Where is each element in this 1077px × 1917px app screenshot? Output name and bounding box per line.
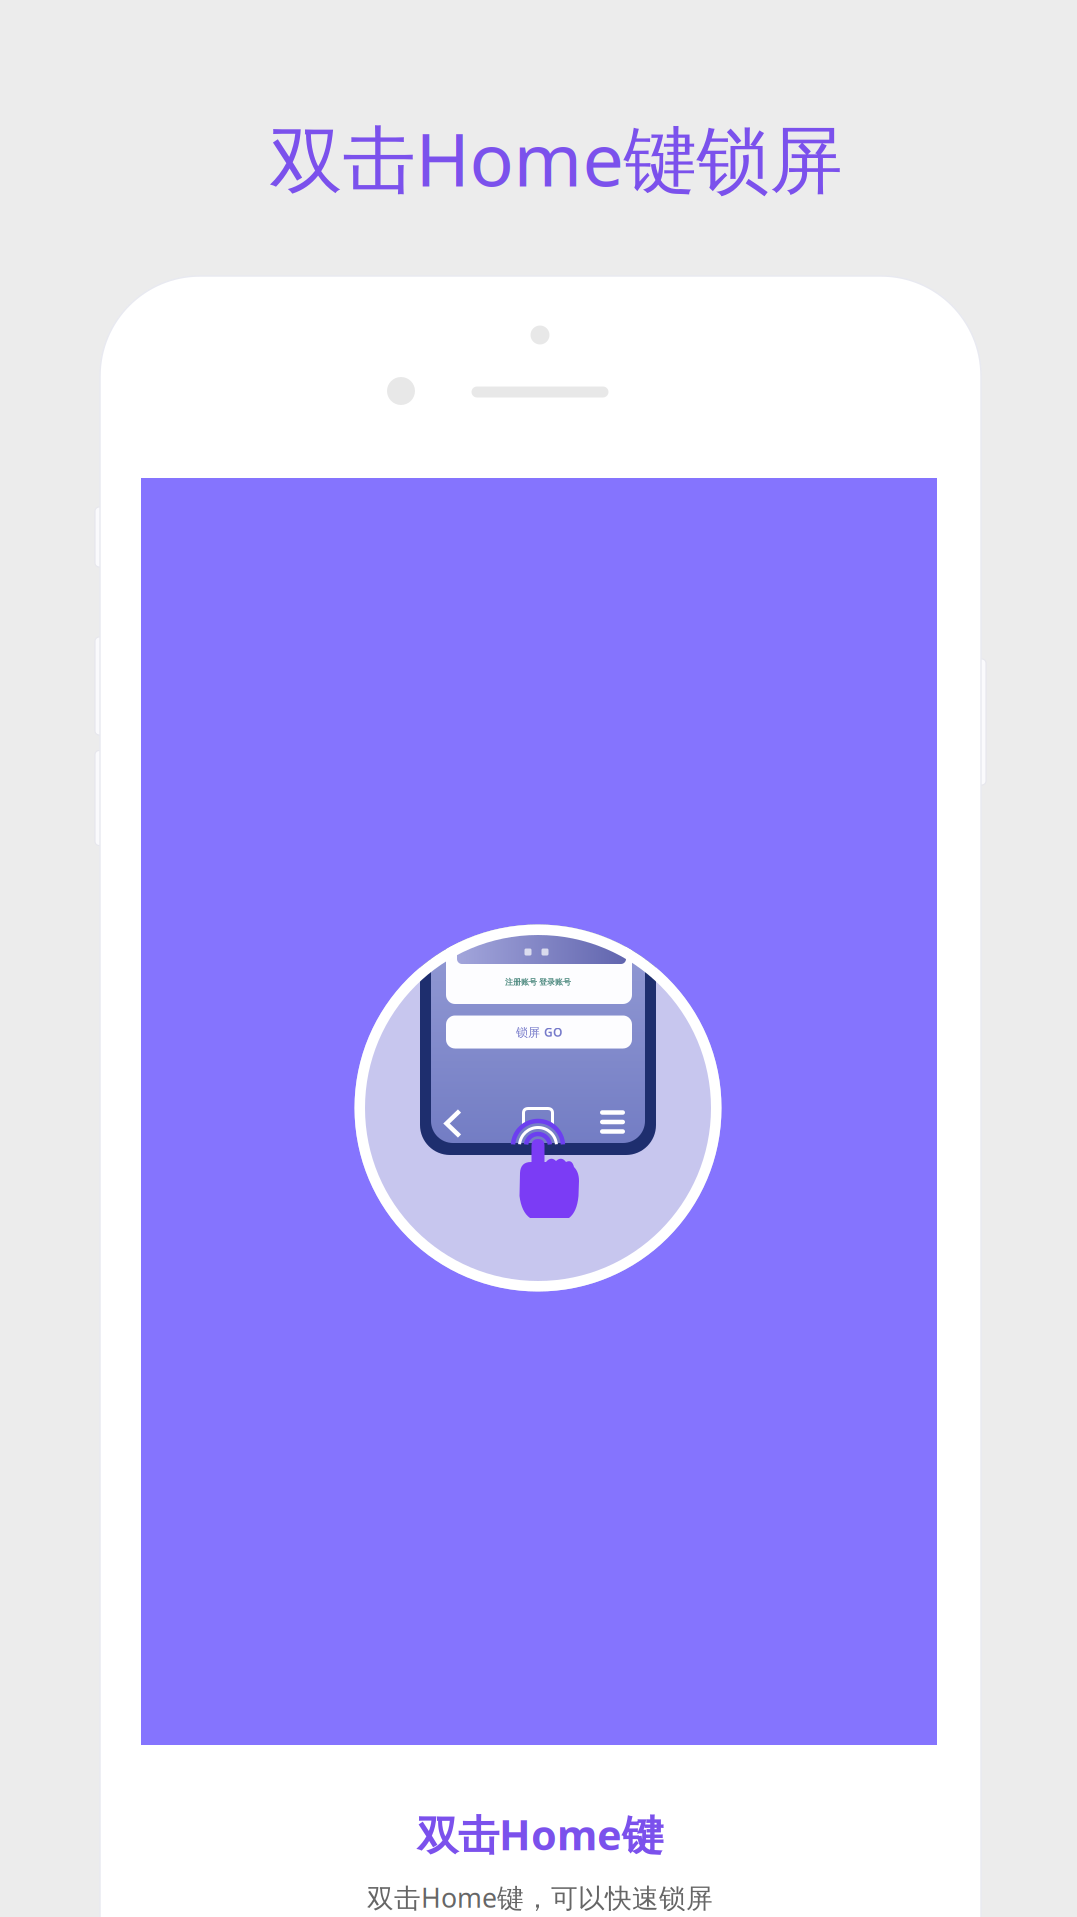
staticText: 双击Home键 <box>417 1807 663 1862</box>
staticText: 双击Home键，可以快速锁屏 <box>367 1880 713 1915</box>
staticText: 双击Home键锁屏 <box>269 109 842 207</box>
button[interactable]: 锁屏 GO <box>446 1015 632 1048</box>
button[interactable]: Back <box>440 1105 478 1143</box>
button[interactable]: Menu <box>593 1103 631 1141</box>
button[interactable]: 双击Home键 <box>142 1775 938 1917</box>
staticText: 锁屏 GO <box>516 1024 562 1040</box>
staticText: 注册账号 登录账号 <box>505 977 571 987</box>
